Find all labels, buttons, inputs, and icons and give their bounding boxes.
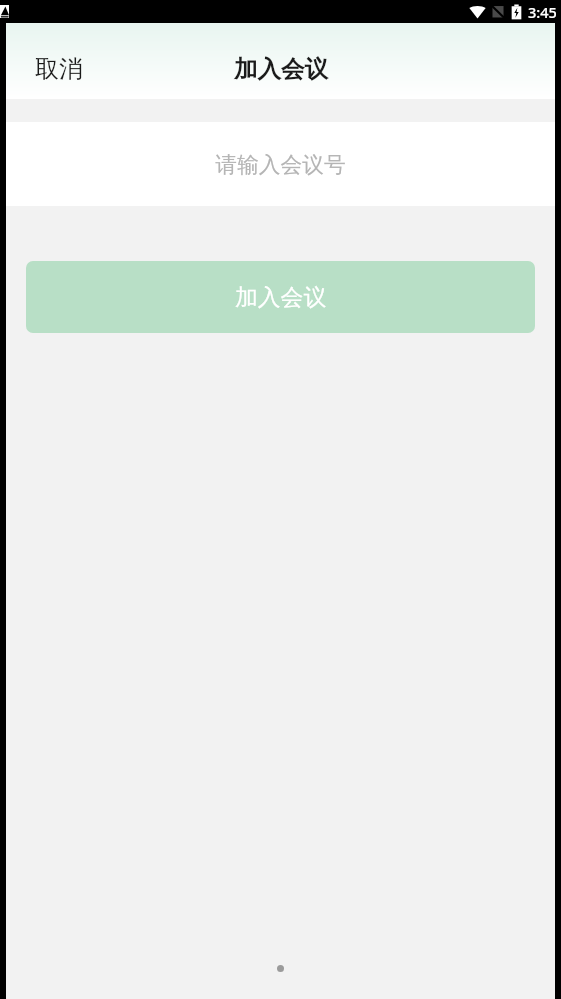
staticText: 请输入会议号 — [215, 151, 346, 178]
button[interactable]: 加入会议 — [26, 261, 535, 333]
staticText: 取消 — [35, 54, 83, 84]
other: Notification — [0, 5, 9, 18]
other: No SIM — [492, 5, 504, 18]
other: Wi-Fi — [469, 5, 486, 19]
staticText: 3:45 — [528, 2, 557, 22]
staticText: 加入会议 — [234, 54, 328, 84]
staticText: 加入会议 — [235, 283, 327, 312]
other: Battery charging — [511, 4, 522, 20]
button[interactable]: 取消 — [29, 48, 89, 90]
button[interactable]: 请输入会议号 — [6, 122, 555, 206]
other: Home indicator — [277, 965, 284, 972]
